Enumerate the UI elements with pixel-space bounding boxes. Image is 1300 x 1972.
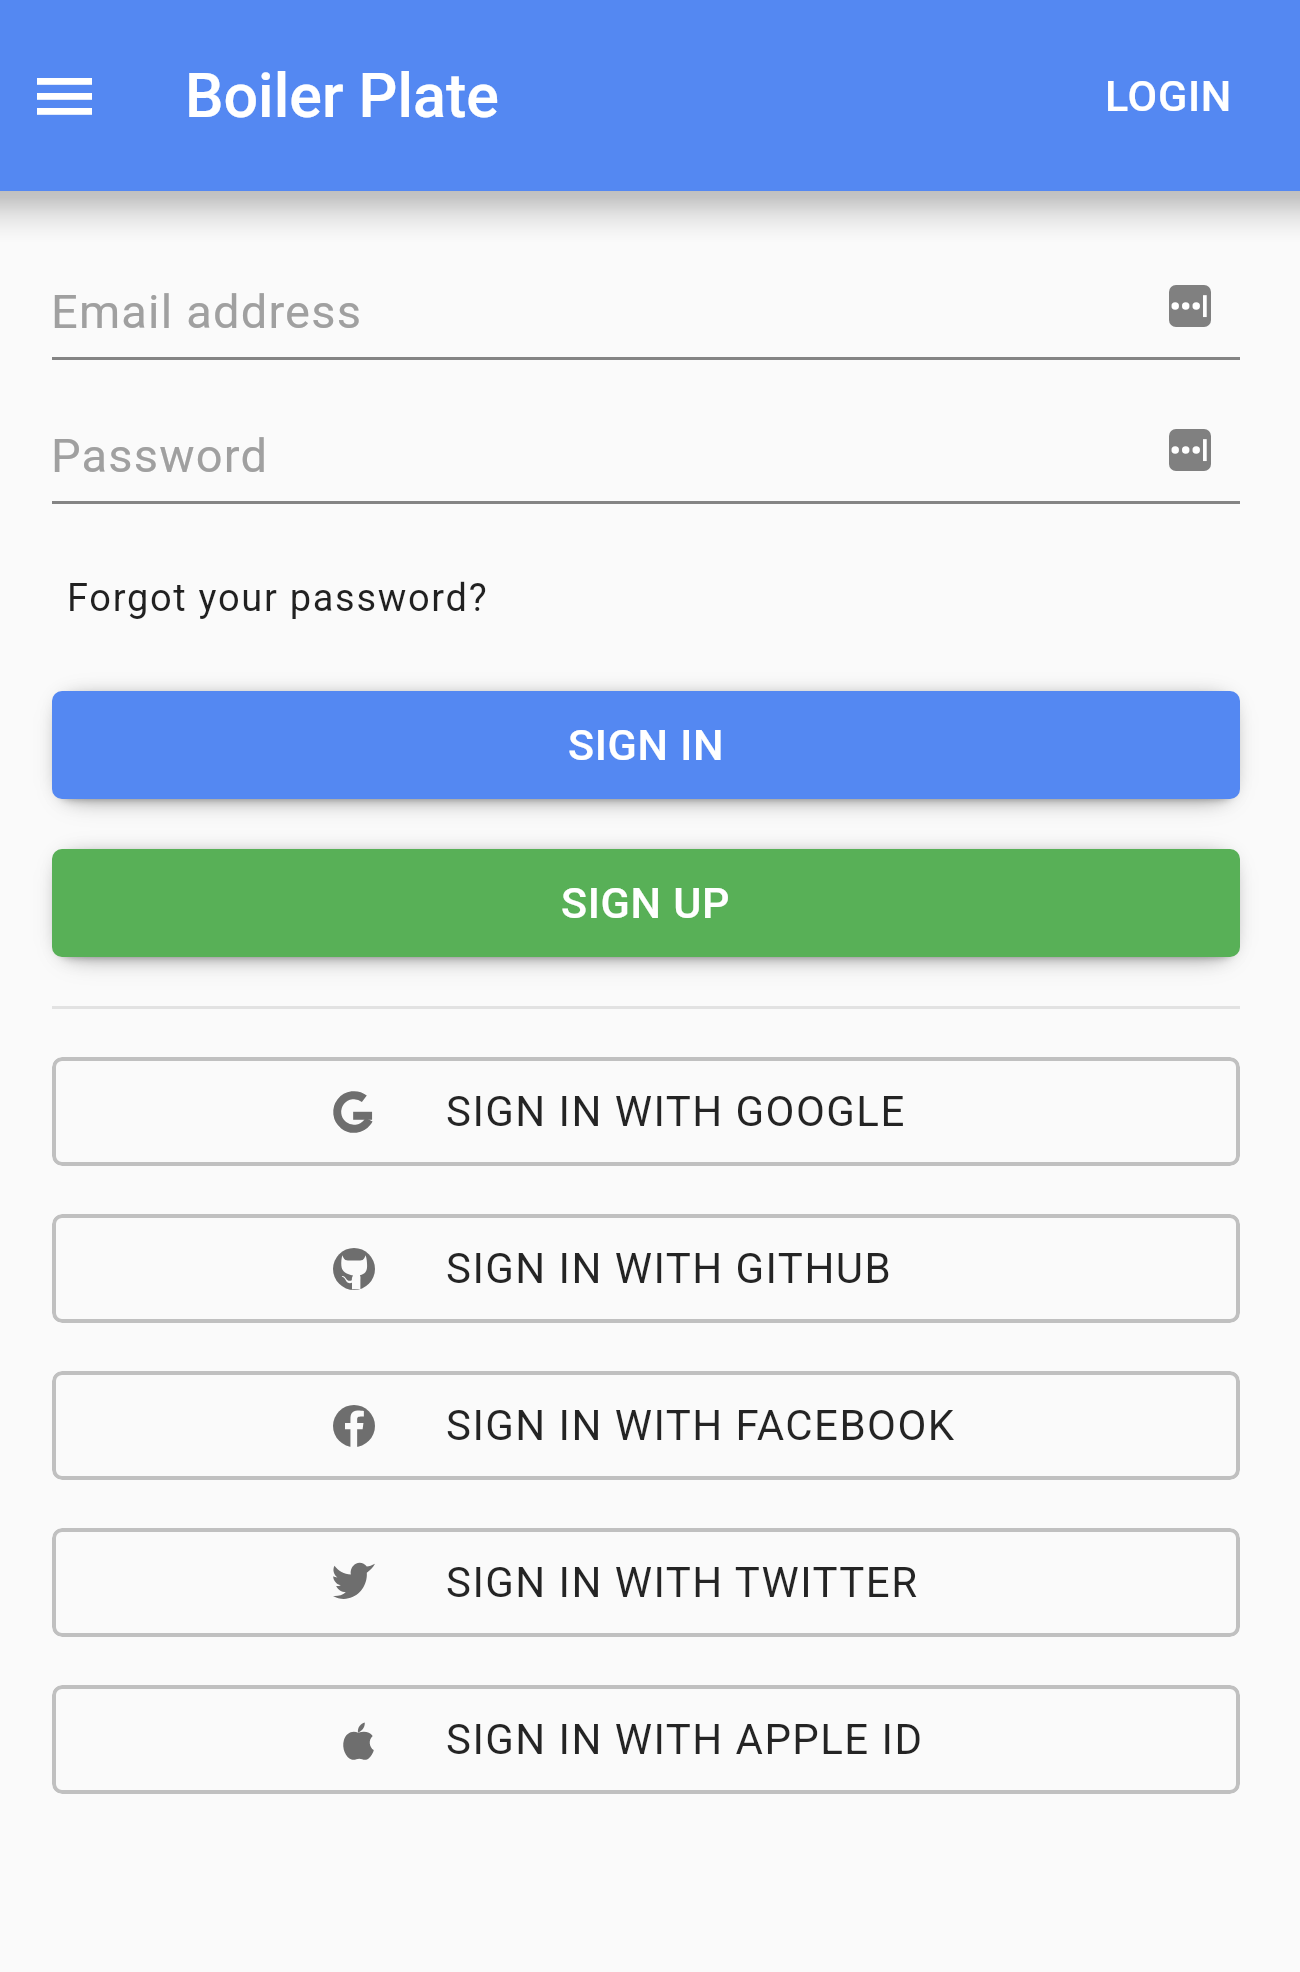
button[interactable]: SIGN IN WITH GOOGLE bbox=[52, 1057, 1240, 1166]
staticText: Email address bbox=[51, 284, 363, 339]
staticText: Boiler Plate bbox=[185, 60, 499, 131]
other: Autofill bbox=[1169, 285, 1211, 327]
staticText: SIGN IN bbox=[568, 720, 725, 770]
button[interactable]: SIGN UP bbox=[52, 849, 1240, 957]
button[interactable]: Password bbox=[52, 409, 1240, 501]
button[interactable]: Email address bbox=[52, 265, 1240, 357]
button[interactable]: SIGN IN WITH GITHUB bbox=[52, 1214, 1240, 1323]
staticText: SIGN IN WITH GITHUB bbox=[446, 1244, 893, 1293]
staticText: SIGN UP bbox=[561, 878, 731, 928]
button[interactable]: Open navigation menu bbox=[14, 46, 114, 146]
staticText: Forgot your password? bbox=[67, 576, 489, 621]
staticText: Password bbox=[51, 428, 269, 483]
other: Autofill bbox=[1169, 429, 1211, 471]
staticText: SIGN IN WITH TWITTER bbox=[446, 1558, 919, 1607]
staticText: LOGIN bbox=[1105, 71, 1232, 121]
button[interactable]: SIGN IN WITH TWITTER bbox=[52, 1528, 1240, 1637]
button[interactable]: SIGN IN WITH APPLE ID bbox=[52, 1685, 1240, 1794]
staticText: SIGN IN WITH GOOGLE bbox=[446, 1087, 906, 1136]
button[interactable]: LOGIN bbox=[1065, 45, 1272, 147]
staticText: SIGN IN WITH APPLE ID bbox=[446, 1715, 924, 1764]
button[interactable]: SIGN IN WITH FACEBOOK bbox=[52, 1371, 1240, 1480]
staticText: SIGN IN WITH FACEBOOK bbox=[446, 1401, 956, 1450]
button[interactable]: SIGN IN bbox=[52, 691, 1240, 799]
button[interactable]: Forgot your password? bbox=[49, 564, 507, 633]
